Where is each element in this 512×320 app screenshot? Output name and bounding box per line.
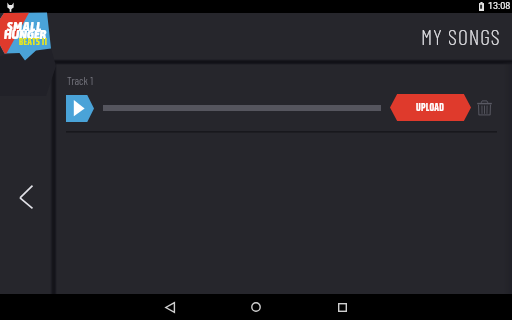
button[interactable]: Delete	[476, 98, 493, 116]
button[interactable]: Back	[16, 182, 36, 210]
button[interactable]: UPLOAD	[390, 94, 471, 121]
staticText: UPLOAD	[416, 99, 445, 116]
staticText: Track 1	[67, 74, 94, 87]
staticText: 13:08	[488, 1, 511, 12]
staticText: MY SONGS	[421, 23, 501, 49]
staticText: HUNGER	[4, 27, 47, 42]
staticText: BEATS II	[19, 34, 48, 50]
button[interactable]: Home	[228, 294, 284, 320]
staticText: SMALL	[7, 19, 43, 34]
button[interactable]: Play	[66, 95, 94, 122]
button[interactable]: Back	[142, 294, 198, 320]
button[interactable]: Recents	[314, 294, 370, 320]
